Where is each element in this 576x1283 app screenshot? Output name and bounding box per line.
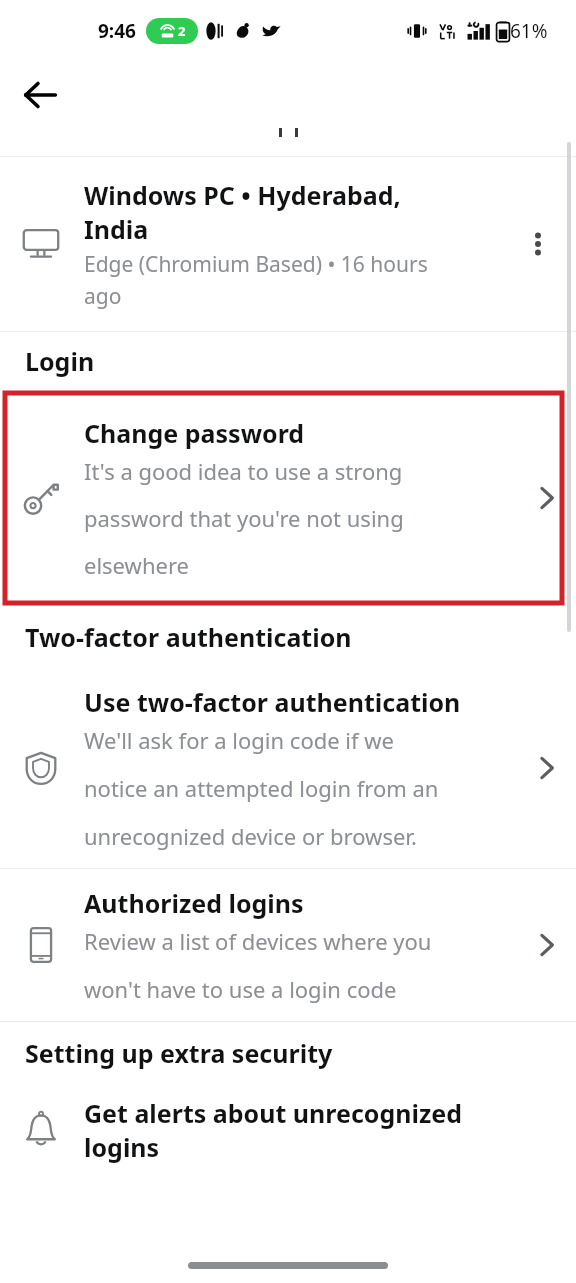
button[interactable]: Get alerts about unrecognized logins	[0, 1084, 576, 1176]
button[interactable]: Use two-factor authentication	[0, 668, 576, 868]
staticText: 61%	[510, 18, 548, 44]
staticText: Two-factor authentication	[25, 620, 352, 654]
staticText: Edge (Chromium Based) • 16 hours ago	[84, 250, 428, 310]
staticText: 9:46	[98, 18, 136, 44]
staticText: Windows PC • Hyderabad, India	[84, 178, 401, 246]
staticText: Review a list of devices where you won't…	[84, 926, 432, 1004]
staticText: 2	[178, 22, 186, 40]
staticText: Use two-factor authentication	[84, 685, 461, 719]
button[interactable]: Windows PC • Hyderabad, India	[0, 157, 576, 331]
staticText: Get alerts about unrecognized logins	[84, 1096, 463, 1164]
button[interactable]: Authorized logins	[0, 869, 576, 1021]
staticText: Setting up extra security	[25, 1036, 333, 1070]
button[interactable]: Back	[12, 67, 68, 123]
staticText: Login	[25, 344, 95, 378]
button[interactable]: Change password	[0, 390, 576, 606]
staticText: Change password	[84, 416, 305, 450]
staticText: It's a good idea to use a strong passwor…	[84, 456, 404, 580]
staticText: We'll ask for a login code if we notice …	[84, 725, 439, 851]
button[interactable]: More options	[512, 218, 564, 270]
staticText: Authorized logins	[84, 886, 304, 920]
